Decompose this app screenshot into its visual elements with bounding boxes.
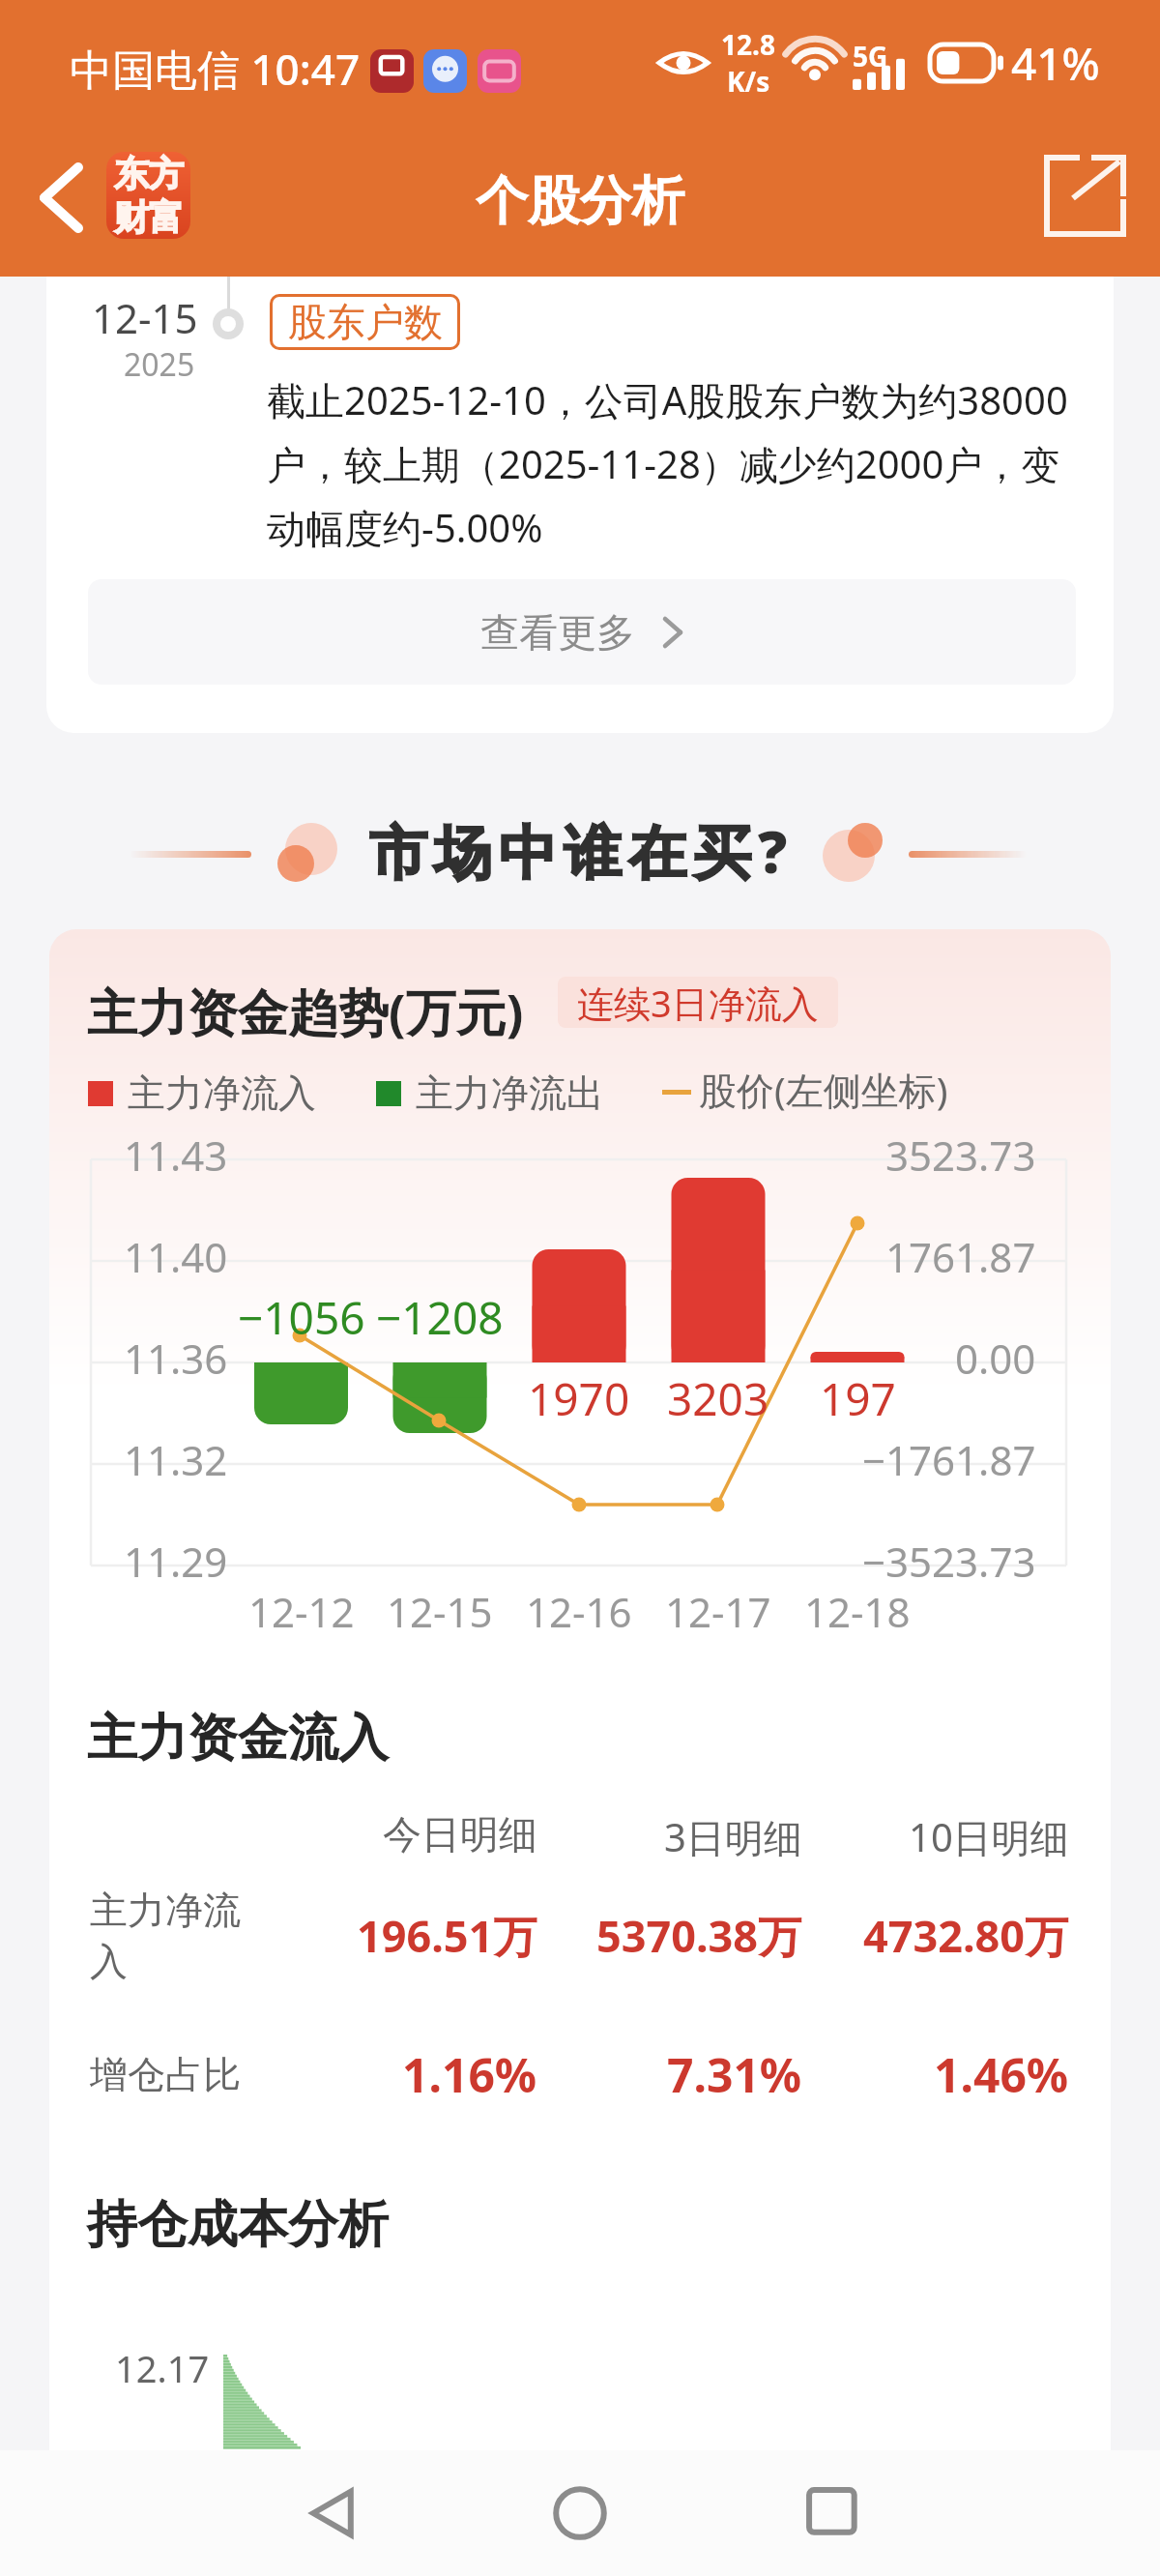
staticText: 主力净流出	[416, 1069, 604, 1117]
button[interactable]: Back	[294, 2473, 375, 2554]
staticText: 12-18	[804, 1584, 911, 1639]
staticText: 12.17	[115, 2343, 210, 2393]
button[interactable]: Home	[539, 2473, 621, 2554]
button[interactable]: 查看更多	[88, 579, 1076, 685]
staticText: 196.51万	[357, 1906, 537, 1965]
staticText: 1970	[528, 1368, 630, 1429]
staticText: −1056	[238, 1287, 365, 1348]
staticText: 11.40	[124, 1229, 228, 1284]
staticText: 3日明细	[664, 1810, 802, 1863]
button[interactable]: Share	[1037, 148, 1133, 244]
staticText: 东方	[114, 152, 184, 195]
staticText: K/s	[727, 63, 770, 100]
staticText: 增仓占比	[90, 2051, 241, 2098]
staticText: −1761.87	[862, 1432, 1036, 1487]
staticText: −3523.73	[862, 1534, 1036, 1589]
staticText: 主力净流入	[90, 1887, 252, 1986]
staticText: 2025	[124, 343, 195, 386]
staticText: 中国电信 10:47	[70, 40, 361, 98]
staticText: 11.29	[124, 1534, 228, 1589]
staticText: 12-16	[526, 1584, 632, 1639]
staticText: 1.46%	[934, 2043, 1069, 2106]
button[interactable]: Recents	[792, 2473, 873, 2554]
staticText: −1208	[376, 1287, 504, 1348]
staticText: 10日明细	[909, 1810, 1069, 1863]
staticText: 个股分析	[476, 168, 684, 234]
staticText: 4732.80万	[863, 1906, 1069, 1965]
staticText: 11.36	[124, 1331, 228, 1386]
staticText: 3523.73	[885, 1127, 1036, 1183]
staticText: 今日明细	[383, 1810, 537, 1859]
staticText: 0.00	[955, 1331, 1036, 1386]
button[interactable]: Back	[25, 138, 99, 264]
staticText: 查看更多	[480, 608, 635, 657]
staticText: 3203	[667, 1368, 769, 1429]
staticText: 1.16%	[402, 2043, 537, 2106]
staticText: 主力净流入	[128, 1069, 316, 1117]
staticText: 市场中谁在买?	[369, 811, 795, 891]
staticText: 11.32	[124, 1432, 228, 1487]
staticText: 连续3日净流入	[577, 978, 819, 1028]
staticText: 5G	[853, 38, 888, 74]
staticText: 12-17	[665, 1584, 771, 1639]
staticText: 1761.87	[885, 1229, 1036, 1284]
staticText: 主力资金趋势(万元)	[87, 977, 524, 1045]
staticText: 7.31%	[667, 2043, 802, 2106]
staticText: 财富	[114, 195, 184, 239]
staticText: 12-15	[92, 290, 198, 345]
staticText: 197	[820, 1368, 896, 1429]
staticText: 41%	[1011, 33, 1100, 94]
staticText: 持仓成本分析	[87, 2193, 389, 2257]
staticText: 12-15	[387, 1584, 493, 1639]
staticText: 截止2025-12-10，公司A股股东户数为约38000户，较上期（2025-1…	[267, 373, 1077, 554]
button[interactable]: 东方	[106, 152, 190, 239]
staticText: 股东户数	[288, 298, 443, 346]
staticText: 股价(左侧坐标)	[699, 1064, 948, 1115]
staticText: 11.43	[124, 1127, 228, 1183]
staticText: 5370.38万	[596, 1906, 802, 1965]
staticText: 12.8	[721, 26, 775, 63]
staticText: 12-12	[248, 1584, 355, 1639]
staticText: 主力资金流入	[87, 1707, 389, 1771]
